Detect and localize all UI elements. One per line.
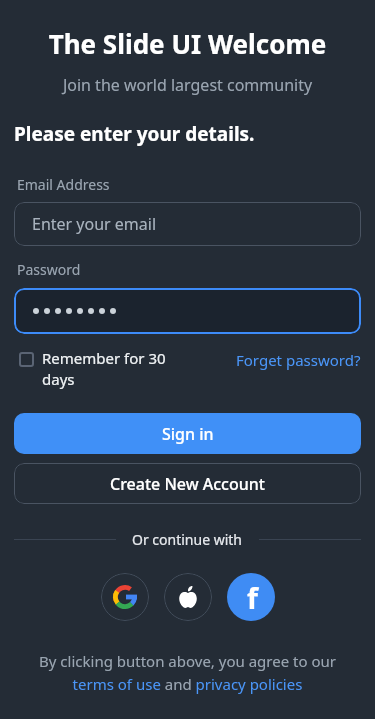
button[interactable]: Create New Account [14, 463, 361, 504]
button[interactable] [101, 573, 149, 621]
button[interactable] [14, 288, 361, 334]
button[interactable]: Remember for 30 days [19, 348, 166, 390]
staticText: By clicking button above, you agree to o… [0, 651, 375, 671]
staticText: Remember for 30 days [42, 348, 166, 390]
button[interactable]: Sign in [14, 413, 361, 454]
staticText: Enter your email [32, 213, 157, 235]
staticText: Please enter your details. [14, 121, 255, 147]
staticText: Join the world largest community [0, 74, 375, 96]
staticText: The Slide UI Welcome [0, 26, 375, 61]
staticText: Sign in [162, 423, 214, 445]
button[interactable]: terms of use and privacy policies [0, 674, 375, 694]
button[interactable]: Forget password? [236, 350, 361, 370]
staticText: Create New Account [110, 473, 265, 495]
staticText: Or continue with [132, 530, 243, 549]
button[interactable]: f [227, 573, 275, 621]
button[interactable] [164, 573, 212, 621]
staticText: f [247, 579, 258, 617]
staticText: Email Address [17, 175, 110, 194]
button[interactable]: Enter your email [14, 202, 361, 246]
staticText: Password [17, 260, 81, 279]
